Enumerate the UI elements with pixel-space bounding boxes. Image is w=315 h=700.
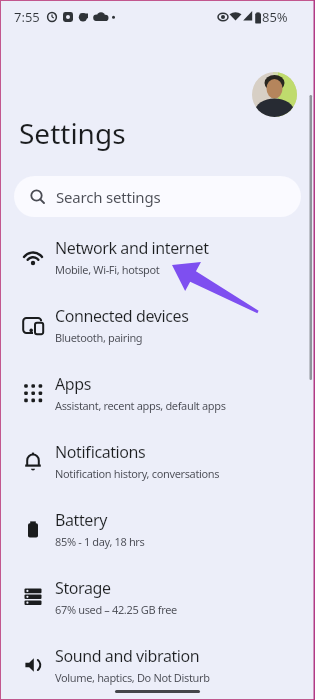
button[interactable]: Apps xyxy=(0,359,315,427)
staticText: Notifications xyxy=(55,441,146,463)
staticText: Sound and vibration xyxy=(55,645,200,667)
staticText: Battery xyxy=(55,509,107,531)
button[interactable]: Connected devices xyxy=(0,291,315,359)
button[interactable] xyxy=(252,72,297,117)
staticText: Settings xyxy=(19,114,126,152)
staticText: Network and internet xyxy=(55,237,209,259)
staticText: Assistant, recent apps, default apps xyxy=(55,398,226,413)
staticText: Notification history, conversations xyxy=(55,466,220,481)
staticText: 85% xyxy=(262,8,288,26)
staticText: 85% - 1 day, 18 hrs xyxy=(55,534,145,549)
staticText: Storage xyxy=(55,577,111,599)
staticText: Bluetooth, pairing xyxy=(55,330,143,345)
staticText: 7:55 xyxy=(14,8,40,26)
staticText: Volume, haptics, Do Not Disturb xyxy=(55,670,210,685)
button[interactable]: Sound and vibration xyxy=(0,631,315,699)
staticText: Apps xyxy=(55,373,91,395)
button[interactable]: Network and internet xyxy=(0,223,315,291)
button[interactable]: Storage xyxy=(0,563,315,631)
button[interactable]: Search settings xyxy=(14,176,301,217)
staticText: Connected devices xyxy=(55,305,189,327)
staticText: Mobile, Wi-Fi, hotspot xyxy=(55,262,160,277)
staticText: Search settings xyxy=(56,187,161,207)
staticText: 67% used – 42.25 GB free xyxy=(55,602,177,617)
button[interactable]: Notifications xyxy=(0,427,315,495)
button[interactable]: Battery xyxy=(0,495,315,563)
